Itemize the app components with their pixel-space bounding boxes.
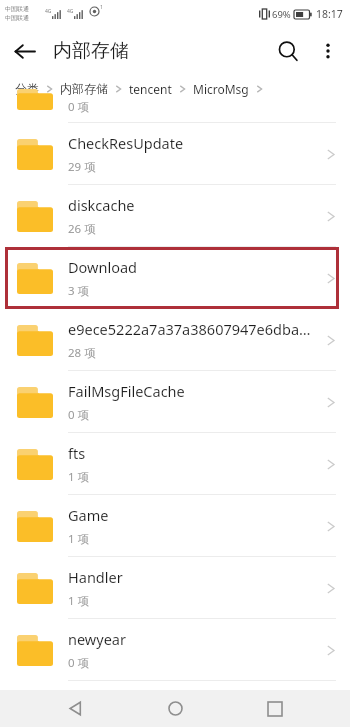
staticText: 28 项 bbox=[68, 345, 96, 361]
button[interactable]: FailMsgFileCache bbox=[0, 371, 350, 433]
staticText: 4G bbox=[67, 8, 74, 15]
button[interactable]: Game bbox=[0, 495, 350, 557]
staticText: 0 项 bbox=[68, 655, 90, 671]
button[interactable]: 分类 bbox=[13, 81, 41, 96]
staticText: 1 项 bbox=[68, 593, 90, 609]
button[interactable]: Download bbox=[0, 247, 350, 309]
button[interactable]: e9ece5222a7a37a38607947e6dba… bbox=[0, 309, 350, 371]
staticText: 29 项 bbox=[68, 159, 96, 175]
staticText: 内部存储 bbox=[53, 39, 129, 63]
button[interactable]: newyear bbox=[0, 619, 350, 681]
button[interactable]: More options bbox=[309, 32, 347, 70]
button[interactable]: Recents bbox=[250, 690, 300, 727]
button[interactable]: 0 项 bbox=[0, 102, 350, 123]
button[interactable]: Search bbox=[267, 30, 309, 72]
staticText: 1 项 bbox=[68, 531, 90, 547]
staticText: newyear bbox=[68, 629, 126, 649]
staticText: FailMsgFileCache bbox=[68, 381, 185, 401]
staticText: Handler bbox=[68, 567, 123, 587]
staticText: 内部存储 bbox=[60, 81, 108, 96]
staticText: 中国联通 bbox=[5, 14, 29, 22]
button[interactable]: tencent bbox=[127, 81, 174, 97]
staticText: tencent bbox=[129, 81, 172, 97]
staticText: 1 项 bbox=[68, 469, 90, 485]
staticText: MicroMsg bbox=[193, 81, 249, 97]
staticText: Game bbox=[68, 505, 109, 525]
staticText: 0 项 bbox=[68, 99, 90, 115]
staticText: 中国联通 bbox=[5, 5, 29, 13]
staticText: diskcache bbox=[68, 195, 135, 215]
staticText: 3 项 bbox=[68, 283, 90, 299]
staticText: 1 bbox=[100, 4, 103, 11]
button[interactable]: Back bbox=[5, 32, 43, 70]
staticText: 69% bbox=[272, 8, 291, 21]
staticText: 4G bbox=[45, 8, 52, 15]
button[interactable]: fts bbox=[0, 433, 350, 495]
staticText: Download bbox=[68, 257, 137, 277]
staticText: fts bbox=[68, 443, 86, 463]
staticText: 分类 bbox=[15, 81, 39, 96]
button[interactable]: diskcache bbox=[0, 185, 350, 247]
staticText: CheckResUpdate bbox=[68, 133, 184, 153]
button[interactable]: MicroMsg bbox=[191, 81, 251, 97]
button[interactable]: Handler bbox=[0, 557, 350, 619]
button[interactable]: 内部存储 bbox=[58, 81, 110, 96]
staticText: 18:17 bbox=[316, 7, 343, 21]
staticText: e9ece5222a7a37a38607947e6dba… bbox=[68, 319, 311, 339]
button[interactable]: Back bbox=[50, 690, 100, 727]
button[interactable]: CheckResUpdate bbox=[0, 123, 350, 185]
staticText: 26 项 bbox=[68, 221, 96, 237]
button[interactable]: Home bbox=[150, 690, 200, 727]
staticText: 0 项 bbox=[68, 407, 90, 423]
